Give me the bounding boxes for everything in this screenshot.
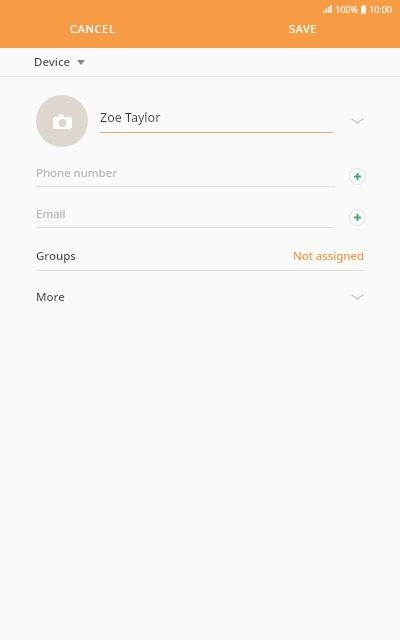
- staticText: 10:00: [369, 3, 393, 15]
- button[interactable]: CANCEL: [58, 16, 128, 41]
- staticText: Not assigned: [293, 248, 365, 264]
- button[interactable]: Phone number: [36, 165, 335, 187]
- button[interactable]: SAVE: [277, 16, 330, 41]
- button[interactable]: Expand name fields: [347, 111, 367, 131]
- button[interactable]: Groups: [0, 248, 400, 271]
- staticText: 100%: [335, 3, 358, 15]
- staticText: Zoe Taylor: [100, 109, 161, 126]
- button[interactable]: Add email: [347, 207, 367, 227]
- staticText: Email: [36, 206, 66, 222]
- staticText: Device: [34, 54, 71, 70]
- staticText: Groups: [36, 248, 76, 264]
- staticText: More: [36, 289, 65, 305]
- button[interactable]: Device: [0, 48, 400, 76]
- staticText: Phone number: [36, 165, 117, 181]
- button[interactable]: Email: [36, 206, 335, 228]
- button[interactable]: Add phone number: [347, 166, 367, 186]
- button[interactable]: Change contact photo: [36, 95, 88, 147]
- button[interactable]: More: [0, 284, 400, 310]
- staticText: CANCEL: [70, 21, 116, 36]
- staticText: SAVE: [289, 21, 318, 36]
